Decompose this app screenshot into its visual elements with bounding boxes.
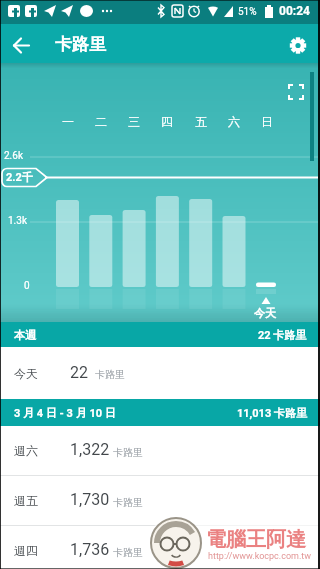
staticText: 卡路里 [113, 446, 143, 459]
staticText: 三 [128, 114, 140, 129]
button[interactable]: 本週 [0, 322, 320, 347]
staticText: 一 [62, 114, 74, 129]
staticText: 週五 [14, 493, 38, 508]
staticText: 11,013 卡路里 [237, 406, 307, 420]
button[interactable] [0, 24, 40, 63]
button[interactable]: 週五 [0, 476, 320, 526]
staticText: http://www.kocpc.com.tw [208, 551, 311, 562]
staticText: 2.6k [4, 150, 23, 162]
staticText: 卡路里 [113, 546, 143, 559]
staticText: 1,730 [70, 490, 110, 509]
staticText: 卡路里 [55, 34, 106, 55]
staticText: 六 [228, 114, 240, 129]
staticText: 本週 [14, 328, 36, 342]
button[interactable]: 週六 [0, 426, 320, 476]
staticText: 今天 [14, 366, 38, 381]
staticText: 週六 [14, 443, 38, 458]
staticText: 電腦王阿達 [206, 527, 306, 552]
staticText: 二 [95, 114, 107, 129]
button[interactable]: 今天 [0, 347, 320, 399]
button[interactable] [282, 78, 310, 106]
staticText: 1.3k [8, 215, 27, 227]
staticText: 卡路里 [95, 368, 125, 381]
button[interactable]: 週四 [0, 526, 320, 569]
staticText: 日 [261, 114, 273, 129]
staticText: 22 [70, 363, 88, 382]
staticText: 51% [238, 6, 257, 18]
staticText: 週四 [14, 543, 38, 558]
staticText: 00:24 [279, 4, 310, 18]
staticText: 1,736 [70, 540, 110, 559]
button[interactable] [276, 24, 320, 63]
staticText: 2.2千 [6, 170, 33, 184]
staticText: 1,322 [70, 440, 110, 459]
staticText: 卡路里 [113, 496, 143, 509]
staticText: 22 卡路里 [258, 328, 307, 342]
staticText: 五 [195, 114, 207, 129]
staticText: 今天 [254, 306, 276, 320]
staticText: 0 [24, 280, 30, 292]
staticText: 3 月 4 日 - 3 月 10 日 [14, 406, 116, 420]
staticText: 四 [161, 114, 173, 129]
